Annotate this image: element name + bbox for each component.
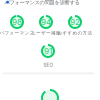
staticText: 98: [12, 17, 22, 27]
staticText: ユーザー補助: [31, 30, 61, 36]
staticText: 94: [41, 17, 51, 27]
staticText: パフォーマンス: [0, 30, 34, 36]
staticText: パフォーマンスの問題を診断する: [4, 0, 79, 6]
staticText: SEO: [43, 62, 52, 68]
staticText: 92: [70, 17, 80, 27]
staticText: 91: [44, 46, 52, 56]
staticText: おすすめの方法: [57, 30, 92, 36]
